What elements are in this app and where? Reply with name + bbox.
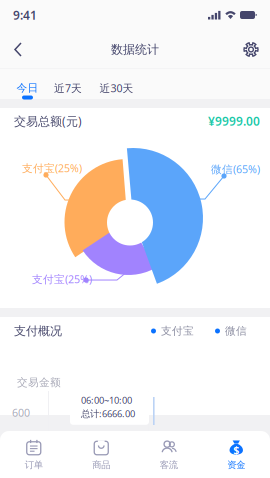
staticText: 交易金额 (17, 376, 61, 389)
staticText: 支付概况 (14, 324, 62, 338)
button[interactable]: Settings (236, 30, 266, 69)
staticText: 交易总额(元) (14, 113, 82, 129)
staticText: ¥9999.00 (208, 113, 260, 129)
staticText: 微信(65%) (211, 162, 260, 176)
staticText: 资金 (227, 459, 245, 471)
staticText: $ (233, 443, 239, 457)
button[interactable]: 订单 (0, 431, 67, 478)
staticText: 支付宝(25%) (22, 161, 82, 175)
staticText: 06:00~10:00 (81, 394, 132, 406)
staticText: 数据统计 (111, 42, 159, 57)
staticText: 支付宝(25%) (32, 272, 92, 286)
staticText: 今日 (16, 81, 38, 94)
button[interactable]: $ (202, 431, 270, 478)
button[interactable]: 客流 (135, 431, 202, 478)
button[interactable]: 近30天 (91, 69, 142, 99)
button[interactable]: 今日 (9, 69, 46, 99)
staticText: 近7天 (54, 81, 82, 95)
staticText: 支付宝 (161, 324, 194, 337)
staticText: 订单 (25, 459, 43, 471)
staticText: 商品 (92, 459, 110, 471)
staticText: 9:41 (13, 7, 37, 23)
button[interactable]: 近7天 (46, 69, 90, 99)
staticText: 600 (12, 405, 30, 420)
staticText: 客流 (160, 459, 178, 471)
staticText: 总计:6666.00 (81, 407, 135, 420)
staticText: 微信 (225, 324, 247, 337)
button[interactable]: Back (4, 30, 34, 69)
button[interactable]: 商品 (67, 431, 135, 478)
staticText: 近30天 (99, 81, 133, 95)
